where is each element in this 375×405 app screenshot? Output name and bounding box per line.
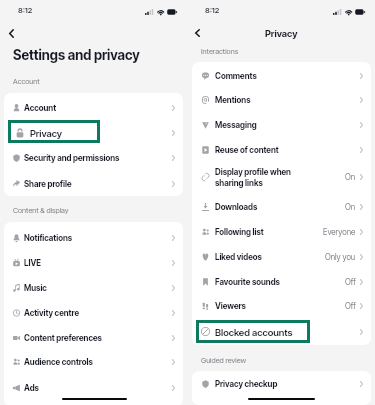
staticText: Privacy checkup [215, 378, 278, 389]
staticText: Blocked accounts [215, 326, 293, 338]
button[interactable]: Security and permissions [4, 145, 183, 170]
button[interactable]: Share profile [4, 171, 183, 196]
staticText: Content & display [13, 206, 69, 215]
staticText: Liked videos [215, 251, 262, 262]
button[interactable]: Privacy checkup [192, 371, 371, 396]
staticText: Favourite sounds [215, 276, 280, 287]
button[interactable]: Favourite sounds [192, 269, 371, 294]
button[interactable]: Activity centre [4, 300, 183, 325]
staticText: Display profile when sharing links [215, 166, 291, 188]
button[interactable]: Back [9, 29, 14, 38]
staticText: 8:12 [205, 6, 220, 15]
button[interactable]: Account [4, 95, 183, 120]
staticText: Everyone [323, 227, 356, 237]
button[interactable]: Music [4, 275, 183, 300]
button[interactable]: Comments [192, 63, 371, 88]
button[interactable]: Display profile when sharing links [192, 162, 371, 192]
button[interactable]: Mentions [192, 87, 371, 112]
staticText: Privacy [30, 127, 63, 139]
staticText: On [345, 172, 356, 182]
staticText: Activity centre [24, 307, 80, 318]
staticText: Viewers [215, 300, 246, 311]
staticText: Reuse of content [215, 144, 279, 155]
button[interactable]: Content preferences [4, 325, 183, 350]
staticText: Ads [24, 382, 39, 393]
staticText: Account [13, 77, 40, 86]
staticText: On [345, 202, 356, 212]
staticText: Privacy [265, 28, 298, 39]
staticText: Account [24, 102, 57, 113]
button[interactable]: Following list [192, 219, 371, 244]
staticText: Only you [325, 252, 356, 262]
staticText: Mentions [215, 94, 251, 105]
button[interactable]: Audience controls [4, 349, 183, 374]
button[interactable]: LIVE [4, 250, 183, 275]
staticText: Share profile [24, 178, 72, 189]
button[interactable]: Ads [4, 375, 183, 400]
staticText: Audience controls [24, 356, 93, 367]
staticText: Off [345, 277, 356, 287]
button[interactable]: Notifications [4, 225, 183, 250]
staticText: 8:12 [18, 6, 33, 15]
staticText: Security and permissions [24, 152, 120, 163]
staticText: Notifications [24, 232, 73, 243]
button[interactable]: Downloads [192, 194, 371, 219]
staticText: Following list [215, 226, 264, 237]
button[interactable]: Messaging [192, 112, 371, 137]
staticText: Content preferences [24, 332, 102, 343]
button[interactable]: Viewers [192, 293, 371, 318]
button[interactable]: Reuse of content [192, 137, 371, 162]
button[interactable]: Blocked accounts [192, 319, 371, 344]
staticText: Interactions [201, 47, 239, 56]
staticText: LIVE [24, 257, 41, 268]
staticText: Comments [215, 70, 257, 81]
staticText: Off [345, 301, 356, 311]
staticText: Guided review [201, 356, 247, 365]
button[interactable]: Liked videos [192, 244, 371, 269]
button[interactable]: Back [195, 29, 200, 37]
staticText: Messaging [215, 119, 257, 130]
staticText: Music [24, 282, 47, 293]
staticText: Settings and privacy [13, 47, 140, 63]
staticText: Downloads [215, 201, 258, 212]
button[interactable]: Privacy [4, 120, 183, 145]
